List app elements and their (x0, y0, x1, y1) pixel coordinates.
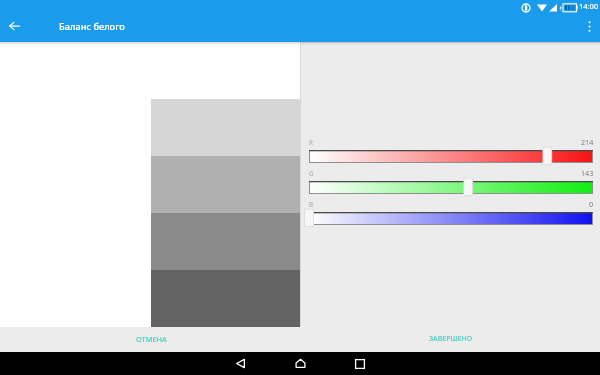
staticText: 143 (581, 168, 594, 178)
staticText: 214 (581, 137, 594, 147)
button[interactable]: B (301, 203, 600, 229)
staticText: ОТМЕНА (136, 334, 167, 344)
button[interactable]: ОТМЕНА (121, 328, 181, 350)
button[interactable]: Home (280, 352, 320, 375)
button[interactable]: ЗАВЕРШЕНО (415, 328, 486, 350)
staticText: 14:00 (579, 1, 599, 11)
staticText: B (309, 200, 314, 208)
button[interactable]: R (301, 141, 600, 167)
staticText: ЗАВЕРШЕНО (429, 334, 473, 344)
staticText: R (309, 138, 313, 146)
staticText: G (309, 169, 314, 177)
button[interactable]: Recents (340, 352, 380, 375)
staticText: 0 (589, 199, 594, 209)
button[interactable]: More options (578, 15, 600, 37)
button[interactable]: Back (2, 14, 26, 38)
button[interactable]: Back (220, 352, 260, 375)
button[interactable]: G (301, 172, 600, 198)
staticText: Баланс белого (59, 20, 125, 33)
